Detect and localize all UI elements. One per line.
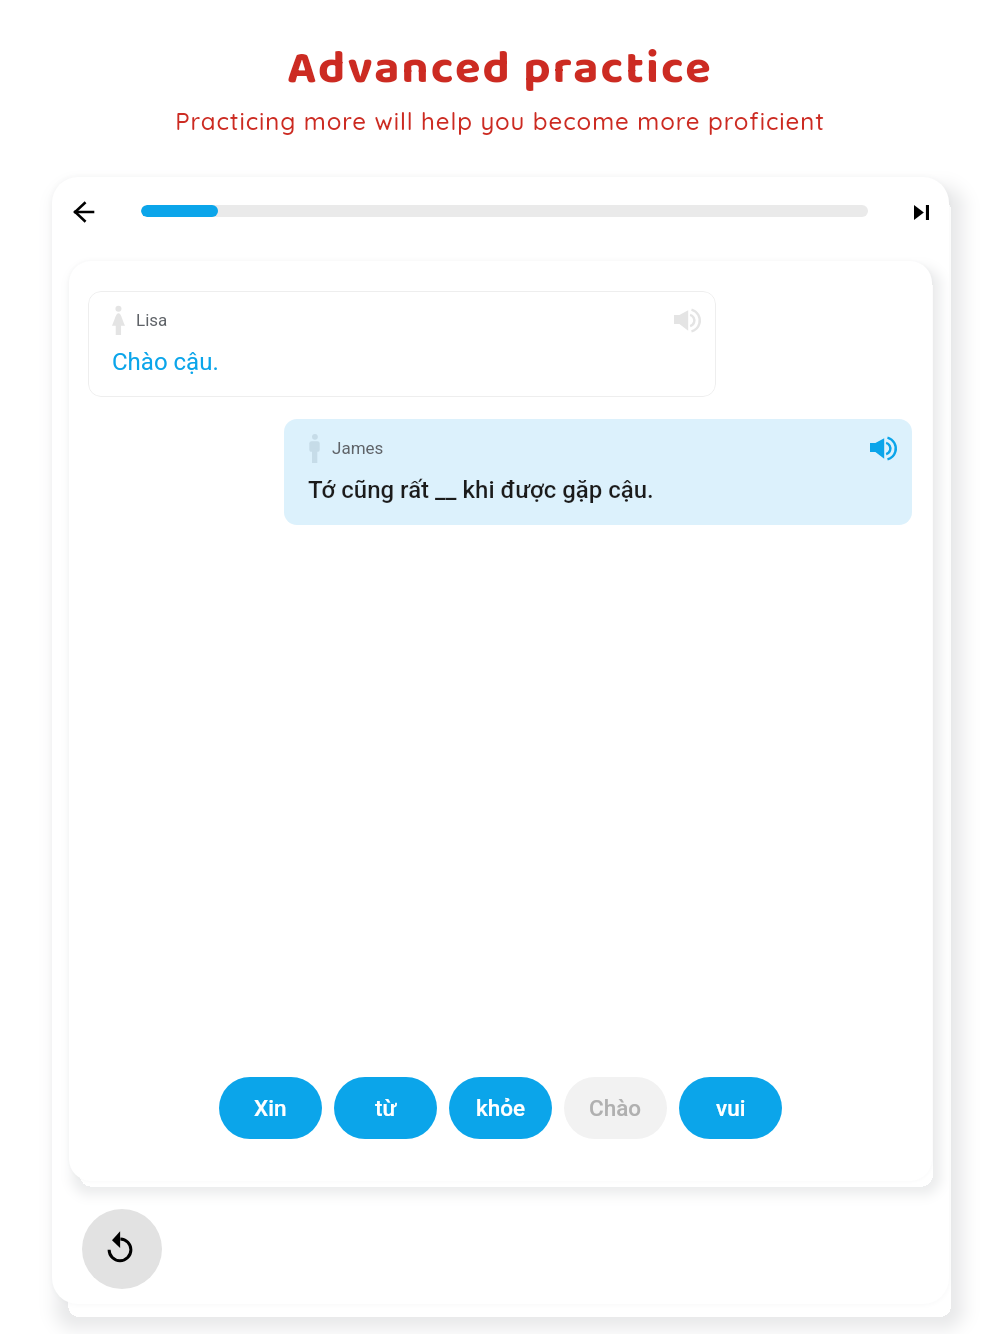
staticText: Practicing more will help you become mor… [0,106,1000,136]
button[interactable]: vui [679,1077,782,1139]
staticText: Lisa [136,310,168,330]
button[interactable]: James [284,419,912,525]
staticText: từ [375,1095,397,1121]
staticText: Tớ cũng rất __ khi được gặp cậu. [308,476,654,504]
staticText: Advanced practice [0,31,1000,106]
button[interactable]: Play audio [669,302,705,338]
button[interactable]: Chào [564,1077,667,1139]
staticText: khỏe [476,1095,526,1121]
button[interactable]: Play audio [865,430,901,466]
button[interactable]: Skip [901,192,941,232]
button[interactable]: Back [59,188,107,236]
staticText: Xin [254,1095,287,1121]
button[interactable]: Replay [82,1209,162,1289]
staticText: James [332,438,384,458]
button[interactable]: từ [334,1077,437,1139]
staticText: Chào cậu. [112,348,219,376]
button[interactable]: khỏe [449,1077,552,1139]
staticText: vui [716,1095,746,1121]
staticText: Chào [589,1095,642,1121]
button[interactable]: Lisa [88,291,716,397]
button[interactable]: Xin [219,1077,322,1139]
